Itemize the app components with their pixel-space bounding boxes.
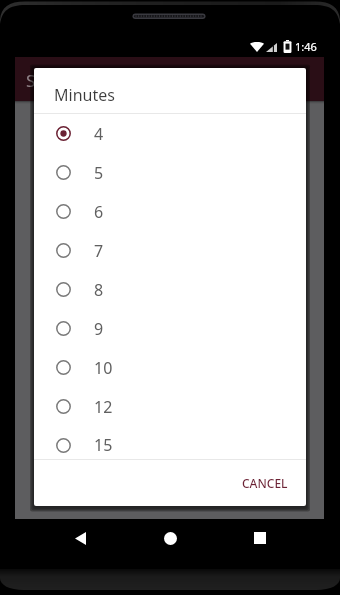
- staticText: Minutes: [54, 84, 115, 106]
- staticText: CANCEL: [242, 475, 288, 491]
- staticText: 8: [94, 279, 104, 301]
- button[interactable]: CANCEL: [224, 465, 306, 501]
- button[interactable]: 8: [34, 270, 306, 309]
- button[interactable]: 6: [34, 192, 306, 231]
- staticText: 6: [94, 201, 104, 223]
- button[interactable]: 5: [34, 153, 306, 192]
- button[interactable]: 10: [34, 348, 306, 387]
- button[interactable]: 12: [34, 387, 306, 426]
- staticText: 10: [94, 357, 113, 379]
- staticText: 15: [94, 434, 113, 456]
- button[interactable]: Recent apps: [240, 519, 280, 557]
- button[interactable]: Back: [60, 519, 100, 557]
- staticText: 7: [94, 240, 104, 262]
- button[interactable]: 4: [34, 114, 306, 153]
- button[interactable]: 15: [34, 426, 306, 464]
- staticText: 12: [94, 396, 113, 418]
- staticText: 9: [94, 318, 104, 340]
- button[interactable]: 7: [34, 231, 306, 270]
- staticText: 1:46: [295, 39, 317, 54]
- staticText: Settings: [26, 69, 91, 92]
- button[interactable]: 9: [34, 309, 306, 348]
- staticText: 5: [94, 162, 104, 184]
- button[interactable]: Home: [150, 519, 190, 557]
- staticText: 4: [94, 123, 104, 145]
